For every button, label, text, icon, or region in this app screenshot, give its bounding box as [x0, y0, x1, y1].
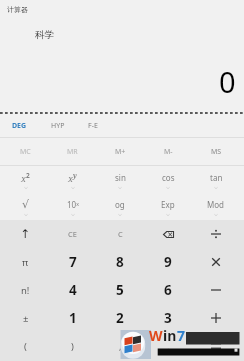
staticText: ,: [119, 340, 122, 353]
staticText: 1: [69, 309, 77, 327]
staticText: 7: [69, 253, 77, 271]
staticText: F-E: [88, 121, 98, 131]
button[interactable]: ,: [96, 332, 144, 360]
button[interactable]: 2: [96, 304, 144, 332]
staticText: 7: [177, 326, 186, 345]
staticText: y: [73, 171, 77, 180]
button[interactable]: MC: [2, 138, 49, 165]
button[interactable]: HYP: [38, 114, 77, 137]
button[interactable]: x: [2, 166, 49, 193]
staticText: Exp: [161, 199, 175, 210]
button[interactable]: 9: [144, 248, 192, 276]
staticText: ±: [23, 312, 29, 325]
staticText: in: [163, 326, 177, 345]
staticText: 8: [116, 253, 124, 271]
button[interactable]: MR: [49, 138, 96, 165]
staticText: n!: [21, 284, 30, 297]
button[interactable]: 计算器: [7, 5, 28, 14]
button[interactable]: plus: [192, 304, 240, 332]
button[interactable]: 科学: [35, 29, 54, 41]
button[interactable]: og: [96, 193, 144, 220]
staticText: MC: [20, 147, 31, 157]
button[interactable]: 7: [49, 248, 96, 276]
button[interactable]: tan: [192, 166, 240, 193]
button[interactable]: minus: [192, 276, 240, 304]
button[interactable]: 3: [144, 304, 192, 332]
staticText: 2: [26, 171, 30, 180]
button[interactable]: (: [2, 332, 49, 360]
staticText: 4: [69, 281, 77, 299]
staticText: M+: [115, 147, 126, 157]
staticText: ): [71, 340, 74, 353]
staticText: 10ˣ: [67, 199, 79, 210]
button[interactable]: cos: [144, 166, 192, 193]
button[interactable]: divide: [192, 220, 240, 248]
button[interactable]: equals: [192, 332, 240, 360]
staticText: HYP: [51, 121, 65, 131]
button[interactable]: x: [49, 166, 96, 193]
button[interactable]: .: [144, 332, 192, 360]
button[interactable]: n!: [2, 276, 49, 304]
staticText: CE: [68, 229, 77, 239]
staticText: MR: [67, 147, 78, 157]
staticText: π: [22, 256, 29, 269]
staticText: 9: [164, 253, 172, 271]
staticText: x: [68, 172, 73, 184]
button[interactable]: ): [49, 332, 96, 360]
staticText: 科学: [35, 29, 54, 41]
staticText: M-: [164, 147, 173, 157]
staticText: √: [22, 198, 30, 211]
button[interactable]: 1: [49, 304, 96, 332]
staticText: 6: [164, 281, 172, 299]
button[interactable]: multiply: [192, 248, 240, 276]
button[interactable]: M-: [144, 138, 192, 165]
staticText: 计算器: [7, 5, 28, 14]
staticText: ↑: [20, 227, 31, 241]
button[interactable]: ↑: [2, 220, 49, 248]
button[interactable]: 4: [49, 276, 96, 304]
staticText: cos: [162, 172, 175, 183]
staticText: 0: [219, 62, 236, 101]
staticText: 5: [116, 281, 124, 299]
button[interactable]: sin: [96, 166, 144, 193]
button[interactable]: 6: [144, 276, 192, 304]
button[interactable]: 5: [96, 276, 144, 304]
staticText: sin: [115, 172, 126, 183]
button[interactable]: π: [2, 248, 49, 276]
staticText: C: [118, 229, 123, 239]
button[interactable]: M+: [96, 138, 144, 165]
staticText: x: [21, 172, 26, 184]
staticText: tan: [210, 172, 223, 183]
button[interactable]: ±: [2, 304, 49, 332]
staticText: DEG: [12, 121, 27, 131]
button[interactable]: DEG: [0, 114, 38, 137]
staticText: MS: [211, 147, 222, 157]
button[interactable]: Backspace: [144, 220, 192, 248]
staticText: .: [167, 340, 170, 353]
button[interactable]: F-E: [77, 114, 108, 137]
button[interactable]: Exp: [144, 193, 192, 220]
button[interactable]: 8: [96, 248, 144, 276]
button[interactable]: C: [96, 220, 144, 248]
staticText: og: [115, 199, 125, 210]
button[interactable]: CE: [49, 220, 96, 248]
button[interactable]: √: [2, 193, 49, 220]
staticText: 3: [164, 309, 172, 327]
button[interactable]: MS: [192, 138, 240, 165]
staticText: (: [24, 340, 27, 353]
staticText: W: [149, 326, 163, 345]
button[interactable]: Mod: [192, 193, 240, 220]
staticText: Mod: [207, 199, 225, 210]
button[interactable]: 10ˣ: [49, 193, 96, 220]
staticText: 2: [116, 309, 124, 327]
